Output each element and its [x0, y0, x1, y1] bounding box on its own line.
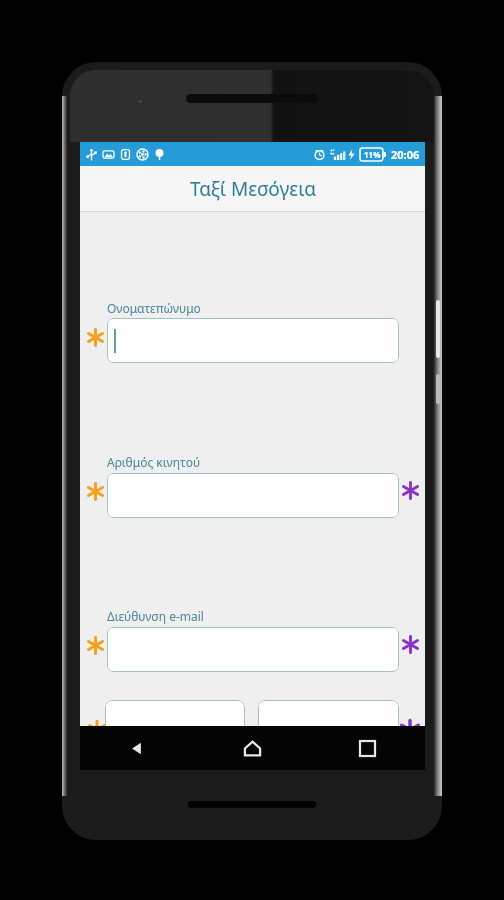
staticText: Διεύθυνση e-mail	[107, 608, 204, 624]
staticText: Ταξί Μεσόγεια	[190, 176, 316, 202]
button[interactable]	[107, 627, 399, 672]
staticText: Αριθμός κινητού	[107, 454, 201, 470]
staticText: 11%	[364, 149, 381, 160]
button[interactable]	[107, 318, 399, 363]
button[interactable]: Home	[195, 726, 310, 770]
staticText: Εγγραφή	[148, 725, 202, 743]
button[interactable]	[107, 473, 399, 518]
staticText: 20:06	[391, 147, 420, 162]
button[interactable]: Είσοδος	[258, 700, 399, 767]
button[interactable]: Recent apps	[310, 726, 425, 770]
button[interactable]: Back	[80, 726, 195, 770]
button[interactable]: Εγγραφή	[105, 700, 245, 767]
staticText: Ονοματεπώνυμο	[107, 300, 201, 316]
staticText: Είσοδος	[304, 725, 353, 743]
